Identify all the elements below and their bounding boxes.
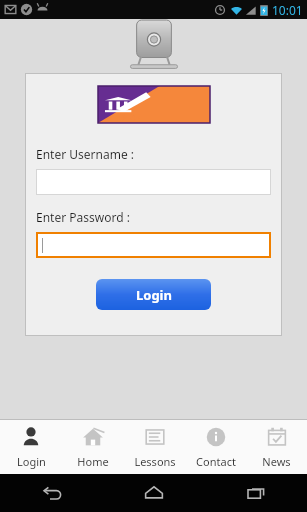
staticText: News	[262, 454, 291, 469]
button[interactable]: Login	[96, 279, 211, 310]
staticText: Home	[77, 454, 109, 469]
staticText: Enter Username :	[36, 146, 134, 162]
staticText: Lessons	[134, 454, 176, 469]
button[interactable]: Recent apps	[205, 474, 307, 512]
button[interactable]: Back	[0, 474, 103, 512]
button[interactable]: Contact	[185, 420, 246, 474]
staticText: 10:01	[272, 2, 303, 18]
staticText: Enter Password :	[36, 209, 130, 225]
other: Webcam	[126, 19, 182, 71]
button[interactable]: Home	[62, 420, 124, 474]
button[interactable]: Home	[103, 474, 205, 512]
button[interactable]	[36, 232, 271, 258]
staticText: Login	[136, 286, 172, 304]
button[interactable]: Login	[0, 420, 62, 474]
staticText: Login	[17, 454, 46, 469]
button[interactable]: News	[246, 420, 307, 474]
button[interactable]	[36, 169, 271, 195]
staticText: Contact	[196, 454, 236, 469]
button[interactable]: Lessons	[124, 420, 185, 474]
